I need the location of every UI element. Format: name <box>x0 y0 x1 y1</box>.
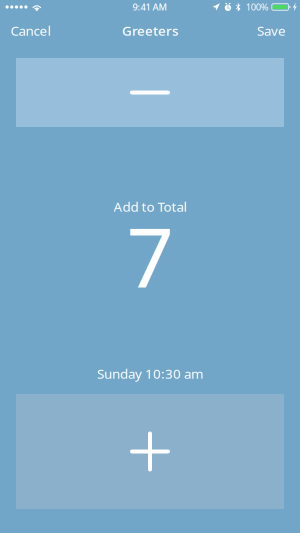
staticText: Add to Total <box>113 198 186 215</box>
staticText: Save <box>257 22 286 39</box>
staticText: 7 <box>126 201 173 310</box>
staticText: 100% <box>246 1 269 13</box>
button[interactable]: Save <box>246 17 300 44</box>
staticText: Sunday 10:30 am <box>97 365 203 382</box>
staticText: 9:41 AM <box>132 1 167 13</box>
staticText: Greeters <box>122 22 178 39</box>
button[interactable]: Add one greeter <box>16 394 284 509</box>
button[interactable]: Remove one greeter <box>16 58 284 127</box>
button[interactable]: Cancel <box>0 17 61 44</box>
staticText: Cancel <box>10 22 50 39</box>
